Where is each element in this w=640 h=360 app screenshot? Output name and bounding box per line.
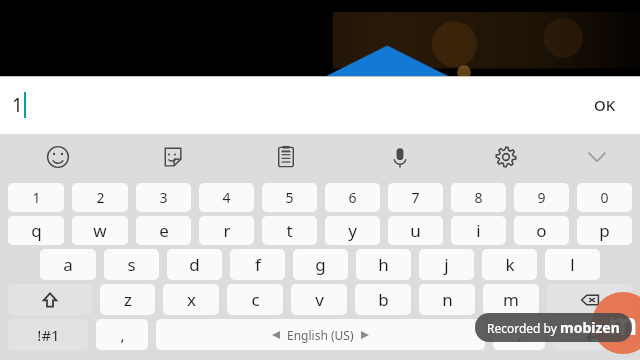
staticText: a — [63, 253, 73, 276]
staticText: 4 — [222, 188, 231, 207]
staticText: w — [93, 219, 107, 242]
button[interactable]: s — [104, 249, 159, 280]
button[interactable]: q — [8, 216, 64, 245]
button[interactable]: o — [514, 216, 569, 245]
staticText: z — [124, 288, 132, 311]
button[interactable]: g — [293, 249, 348, 280]
staticText: 2 — [96, 188, 105, 207]
button[interactable]: v — [291, 284, 347, 315]
button[interactable]: y — [325, 216, 380, 245]
staticText: 8 — [474, 188, 483, 207]
button[interactable]: h — [356, 249, 411, 280]
staticText: v — [315, 288, 324, 311]
button[interactable]: t — [262, 216, 317, 245]
staticText: q — [31, 219, 42, 242]
button[interactable]: e — [136, 216, 191, 245]
button[interactable]: , — [96, 319, 148, 350]
button[interactable]: l — [545, 249, 600, 280]
button[interactable]: 5 — [262, 183, 317, 212]
button[interactable]: z — [100, 284, 155, 315]
button[interactable]: a — [40, 249, 96, 280]
button[interactable]: w — [72, 216, 128, 245]
staticText: m — [608, 303, 638, 344]
button[interactable]: b — [355, 284, 411, 315]
staticText: n — [442, 288, 453, 311]
button[interactable]: Enter — [553, 319, 632, 350]
staticText: l — [570, 253, 575, 276]
button[interactable]: . — [493, 319, 545, 350]
staticText: x — [187, 288, 196, 311]
staticText: e — [159, 219, 169, 242]
staticText: 3 — [159, 188, 168, 207]
staticText: s — [127, 253, 136, 276]
staticText: m — [503, 288, 519, 311]
button[interactable]: f — [230, 249, 285, 280]
button[interactable]: 1 — [8, 183, 64, 212]
staticText: j — [444, 253, 449, 276]
button[interactable]: OK — [586, 89, 624, 121]
staticText: English (US) — [287, 327, 354, 343]
button[interactable]: Clipboard — [229, 134, 343, 180]
staticText: 6 — [348, 188, 357, 207]
staticText: c — [251, 288, 260, 311]
button[interactable]: j — [419, 249, 474, 280]
staticText: u — [410, 219, 421, 242]
button[interactable]: Stickers — [115, 134, 229, 180]
staticText: y — [348, 219, 357, 242]
button[interactable]: 6 — [325, 183, 380, 212]
staticText: k — [505, 253, 515, 276]
staticText: h — [378, 253, 389, 276]
button[interactable]: 8 — [451, 183, 506, 212]
staticText: o — [536, 219, 547, 242]
button[interactable]: 0 — [577, 183, 632, 212]
button[interactable]: r — [199, 216, 254, 245]
staticText: , — [120, 325, 125, 345]
button[interactable]: n — [419, 284, 475, 315]
button[interactable]: 3 — [136, 183, 191, 212]
staticText: b — [378, 288, 389, 311]
button[interactable]: d — [167, 249, 222, 280]
button[interactable]: p — [577, 216, 632, 245]
staticText: . — [517, 325, 522, 345]
staticText: t — [286, 219, 293, 242]
staticText: 1 — [32, 188, 41, 207]
button[interactable]: 2 — [72, 183, 128, 212]
staticText: Recorded by — [487, 320, 560, 336]
staticText: g — [315, 253, 326, 276]
staticText: 1 — [12, 92, 23, 118]
button[interactable]: Emoji — [0, 134, 115, 180]
staticText: !#1 — [37, 325, 60, 345]
staticText: r — [223, 219, 231, 242]
button[interactable]: !#1 — [8, 319, 88, 350]
staticText: 9 — [537, 188, 546, 207]
staticText: mobizen — [560, 318, 620, 337]
button[interactable]: m — [483, 284, 539, 315]
button[interactable]: Settings — [457, 134, 554, 180]
staticText: f — [255, 253, 261, 276]
staticText: i — [476, 219, 481, 242]
button[interactable]: 4 — [199, 183, 254, 212]
staticText: 7 — [411, 188, 420, 207]
staticText: OK — [594, 95, 616, 115]
button[interactable]: u — [388, 216, 443, 245]
button[interactable]: Backspace — [547, 284, 632, 315]
staticText: 5 — [285, 188, 294, 207]
button[interactable]: Collapse keyboard — [554, 134, 640, 180]
button[interactable]: c — [227, 284, 283, 315]
button[interactable]: 9 — [514, 183, 569, 212]
button[interactable]: x — [163, 284, 219, 315]
button[interactable]: i — [451, 216, 506, 245]
button[interactable]: 7 — [388, 183, 443, 212]
button[interactable]: English (US) — [156, 319, 485, 350]
staticText: 0 — [600, 188, 609, 207]
button[interactable]: k — [482, 249, 537, 280]
staticText: d — [189, 253, 200, 276]
button[interactable]: Voice input — [343, 134, 457, 180]
staticText: p — [599, 219, 610, 242]
button[interactable]: Shift — [8, 284, 92, 315]
